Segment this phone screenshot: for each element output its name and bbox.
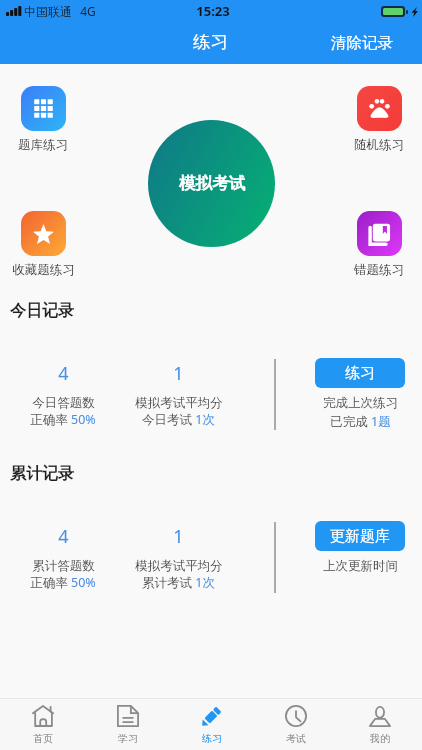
staticText: 1 bbox=[173, 361, 184, 386]
staticText: 练习 bbox=[345, 364, 375, 383]
button[interactable]: 错题练习 bbox=[336, 211, 422, 278]
button[interactable]: 题库练习 bbox=[0, 86, 86, 153]
button[interactable]: 首页 bbox=[0, 699, 85, 745]
staticText: 模拟考试平均分 bbox=[135, 558, 223, 574]
staticText: 1 bbox=[173, 524, 184, 549]
staticText: 已完成 1题 bbox=[330, 413, 391, 430]
button[interactable]: 学习 bbox=[85, 699, 170, 745]
staticText: 学习 bbox=[118, 732, 138, 745]
staticText: 完成上次练习 bbox=[323, 395, 398, 411]
button[interactable]: 练习 bbox=[315, 358, 405, 388]
staticText: 题库练习 bbox=[18, 137, 68, 153]
staticText: 正确率 50% bbox=[30, 574, 96, 591]
button[interactable]: 随机练习 bbox=[336, 86, 422, 153]
button[interactable]: 我的 bbox=[338, 699, 422, 745]
staticText: 中国联通 bbox=[24, 4, 72, 19]
button[interactable]: 更新题库 bbox=[315, 521, 405, 551]
staticText: 累计记录 bbox=[10, 464, 74, 484]
staticText: 我的 bbox=[370, 732, 390, 745]
staticText: 上次更新时间 bbox=[323, 558, 398, 574]
staticText: 模拟考试平均分 bbox=[135, 395, 223, 411]
staticText: 收藏题练习 bbox=[12, 262, 75, 278]
staticText: 模拟考试 bbox=[179, 173, 245, 194]
button[interactable]: 练习 bbox=[170, 699, 254, 745]
staticText: 今日考试 1次 bbox=[142, 411, 215, 428]
staticText: 清除记录 bbox=[331, 33, 393, 53]
staticText: 正确率 50% bbox=[30, 411, 96, 428]
button[interactable]: 收藏题练习 bbox=[0, 211, 86, 278]
button[interactable]: 模拟考试 bbox=[148, 120, 275, 247]
button[interactable]: 考试 bbox=[254, 699, 338, 745]
staticText: 今日答题数 bbox=[32, 395, 95, 411]
staticText: 错题练习 bbox=[354, 262, 404, 278]
staticText: 4 bbox=[58, 361, 69, 386]
staticText: 今日记录 bbox=[10, 301, 74, 321]
staticText: 累计考试 1次 bbox=[142, 574, 215, 591]
staticText: 考试 bbox=[286, 732, 306, 745]
staticText: 首页 bbox=[33, 732, 53, 745]
staticText: 15:23 bbox=[196, 2, 230, 20]
staticText: 累计答题数 bbox=[32, 558, 95, 574]
staticText: 更新题库 bbox=[330, 527, 390, 546]
staticText: 4G bbox=[80, 3, 96, 19]
staticText: 4 bbox=[58, 524, 69, 549]
staticText: 练习 bbox=[202, 732, 222, 745]
staticText: 随机练习 bbox=[354, 137, 404, 153]
button[interactable]: 清除记录 bbox=[317, 26, 407, 60]
staticText: 练习 bbox=[193, 31, 228, 53]
